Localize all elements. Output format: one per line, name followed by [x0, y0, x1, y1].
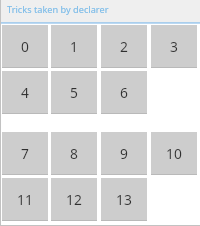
button[interactable]: 1	[51, 25, 97, 68]
staticText: 3	[170, 37, 178, 56]
button[interactable]: 11	[2, 178, 48, 221]
button[interactable]: 0	[2, 25, 48, 68]
button[interactable]: 4	[2, 71, 48, 114]
button[interactable]: 5	[51, 71, 97, 114]
button[interactable]: 13	[101, 178, 147, 221]
staticText: 0	[21, 37, 29, 56]
button[interactable]: 12	[51, 178, 97, 221]
staticText: 7	[21, 144, 29, 163]
staticText: 13	[116, 190, 132, 209]
staticText: 8	[70, 144, 78, 163]
button[interactable]: 7	[2, 132, 48, 175]
button[interactable]: 10	[151, 132, 197, 175]
staticText: 10	[166, 144, 182, 163]
button[interactable]: 9	[101, 132, 147, 175]
button[interactable]: 6	[101, 71, 147, 114]
staticText: 6	[120, 83, 128, 102]
button[interactable]: 2	[101, 25, 147, 68]
staticText: 4	[21, 83, 29, 102]
button[interactable]: 8	[51, 132, 97, 175]
staticText: 12	[66, 190, 82, 209]
staticText: 5	[70, 83, 78, 102]
staticText: 1	[70, 37, 78, 56]
staticText: 2	[120, 37, 128, 56]
button[interactable]: 3	[151, 25, 197, 68]
staticText: 11	[17, 190, 33, 209]
staticText: Tricks taken by declarer	[7, 3, 109, 16]
staticText: 9	[120, 144, 128, 163]
